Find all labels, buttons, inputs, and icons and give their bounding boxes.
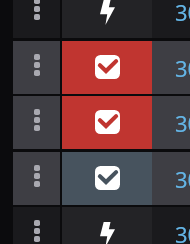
staticText: 30 — [175, 219, 190, 244]
button[interactable]: Reorder habit — [13, 207, 60, 244]
button[interactable]: Reorder habit — [13, 41, 60, 94]
button[interactable]: 30 — [152, 152, 190, 205]
button[interactable]: 30 — [152, 0, 190, 38]
button[interactable]: Toggle checkmark — [62, 96, 152, 149]
button[interactable]: 30 — [152, 207, 190, 244]
button[interactable]: 30 — [152, 41, 190, 94]
staticText: 30 — [175, 53, 190, 83]
button[interactable]: Reorder habit — [13, 152, 60, 205]
button[interactable]: 30 — [152, 96, 190, 149]
button[interactable]: Reorder habit — [13, 96, 60, 149]
button[interactable]: Toggle checkmark — [62, 207, 152, 244]
staticText: 30 — [175, 0, 190, 27]
button[interactable]: Toggle checkmark — [62, 41, 152, 94]
button[interactable]: Toggle checkmark — [62, 0, 152, 38]
button[interactable]: Toggle checkmark — [62, 152, 152, 205]
button[interactable]: Reorder habit — [13, 0, 60, 38]
staticText: 30 — [175, 108, 190, 138]
staticText: 30 — [175, 164, 190, 194]
